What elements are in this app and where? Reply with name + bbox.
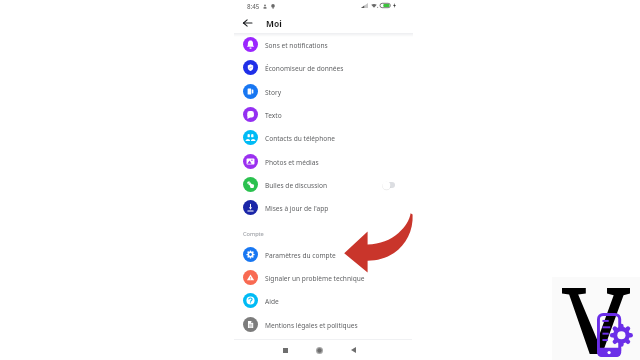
staticText: Mentions légales et politiques: [265, 321, 358, 330]
staticText: Photos et médias: [265, 158, 319, 167]
staticText: 8:45: [247, 2, 260, 10]
staticText: Mises à jour de l'app: [265, 204, 329, 213]
button[interactable]: Back: [347, 344, 359, 356]
button[interactable]: Recents: [279, 344, 291, 356]
button[interactable]: Toggle Bulles de discussion: [382, 180, 395, 190]
staticText: Signaler un problème technique: [265, 274, 365, 283]
staticText: Moi: [266, 18, 282, 29]
button[interactable]: Mises à jour de l'app: [234, 196, 413, 219]
button[interactable]: Texto: [234, 103, 413, 126]
staticText: Compte: [243, 230, 264, 238]
button[interactable]: Photos et médias: [234, 150, 413, 173]
button[interactable]: Mentions légales et politiques: [234, 313, 413, 336]
staticText: Texto: [265, 111, 282, 120]
staticText: Paramètres du compte: [265, 251, 336, 260]
staticText: Contacts du téléphone: [265, 134, 336, 143]
staticText: Story: [265, 88, 282, 97]
button[interactable]: Story: [234, 80, 413, 103]
button[interactable]: Bulles de discussion: [234, 173, 413, 196]
button[interactable]: Paramètres du compte: [234, 243, 413, 266]
button[interactable]: Signaler un problème technique: [234, 266, 413, 289]
staticText: Économiseur de données: [265, 64, 344, 73]
staticText: Aide: [265, 297, 279, 306]
staticText: Sons et notifications: [265, 41, 328, 50]
button[interactable]: Back: [238, 14, 256, 32]
button[interactable]: Aide: [234, 289, 413, 312]
button[interactable]: Économiseur de données: [234, 56, 413, 79]
staticText: Bulles de discussion: [265, 181, 328, 190]
button[interactable]: Contacts du téléphone: [234, 126, 413, 149]
button[interactable]: Home: [313, 344, 325, 356]
button[interactable]: Sons et notifications: [234, 33, 413, 56]
